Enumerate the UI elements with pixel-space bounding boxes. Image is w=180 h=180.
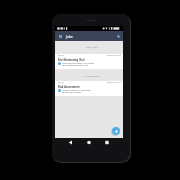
- staticText: Risk Assessment: [58, 85, 80, 89]
- staticText: 29 Jan 2018 10:30: [107, 54, 121, 56]
- staticText: 24 Bletchley Ave MK3: [62, 91, 82, 94]
- staticText: JOB 103: [58, 81, 65, 83]
- button[interactable]: JOB 103: [55, 81, 123, 96]
- staticText: 29 Jan 2018 14:00: [107, 81, 121, 83]
- staticText: Transient Office Plc, Office Bldg,: [62, 89, 91, 92]
- staticText: 500 Marlborough Gate, MK9: [62, 64, 88, 67]
- staticText: JOB 104: [58, 54, 65, 56]
- staticText: NEW JOB: [86, 46, 97, 49]
- staticText: Milton Keynes Theatre, The Theatre,: [62, 62, 95, 65]
- staticText: Site Monitoring Visit: [58, 58, 85, 62]
- button[interactable]: JOB 104: [55, 54, 123, 69]
- button[interactable]: Location filter: [114, 31, 123, 41]
- button[interactable]: Add job: [112, 127, 120, 135]
- staticText: IN PROGRESS: [83, 75, 100, 78]
- staticText: Jobs: [66, 34, 73, 38]
- button[interactable]: Open navigation menu: [56, 31, 65, 41]
